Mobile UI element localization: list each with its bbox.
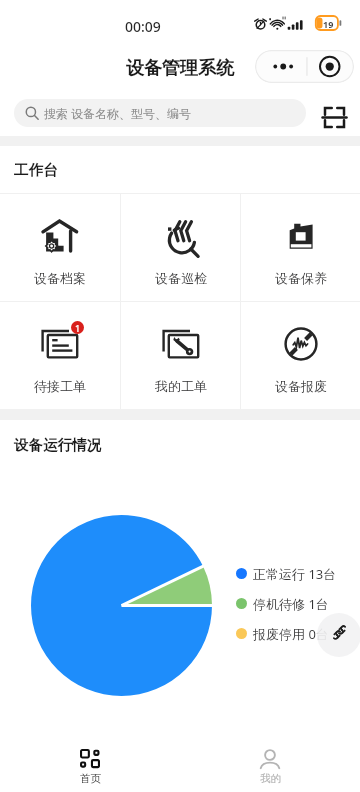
staticText: 首页 xyxy=(80,772,101,785)
staticText: 设备管理系统 xyxy=(126,57,234,80)
button[interactable]: Menu xyxy=(255,50,354,83)
staticText: 待接工单 xyxy=(34,378,86,394)
button[interactable]: 搜索 设备名称、型号、编号 xyxy=(14,99,306,127)
button[interactable]: Link xyxy=(317,613,360,657)
staticText: 工作台 xyxy=(14,161,58,179)
button[interactable]: 首页 xyxy=(0,740,180,792)
staticText: 我的 xyxy=(260,772,281,785)
button[interactable]: 设备档案 xyxy=(0,194,120,301)
staticText: 设备报废 xyxy=(275,378,327,394)
staticText: 设备巡检 xyxy=(155,270,207,286)
staticText: 报废停用 0台 xyxy=(253,625,329,643)
staticText: 设备保养 xyxy=(275,270,327,286)
button[interactable]: 我的 xyxy=(180,740,360,792)
button[interactable]: Scan code xyxy=(318,101,350,133)
button[interactable]: 设备巡检 xyxy=(121,194,240,301)
staticText: 设备运行情况 xyxy=(14,436,101,454)
button[interactable]: 设备保养 xyxy=(241,194,360,301)
staticText: 设备档案 xyxy=(34,270,86,286)
staticText: 我的工单 xyxy=(155,378,207,394)
staticText: 停机待修 1台 xyxy=(253,595,329,613)
staticText: 00:09 xyxy=(125,17,161,36)
button[interactable]: 设备报废 xyxy=(241,302,360,409)
staticText: 1 xyxy=(75,322,81,334)
staticText: 19 xyxy=(323,18,334,30)
button[interactable]: 我的工单 xyxy=(121,302,240,409)
staticText: 搜索 设备名称、型号、编号 xyxy=(44,105,192,121)
button[interactable]: 1 xyxy=(0,302,120,409)
staticText: 正常运行 13台 xyxy=(253,565,337,583)
